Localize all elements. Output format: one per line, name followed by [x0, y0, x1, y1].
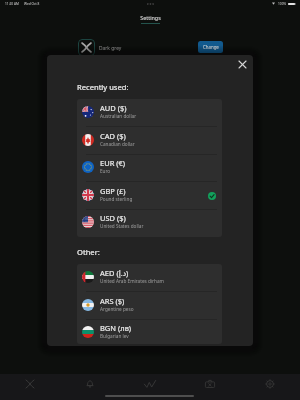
button[interactable]: CAD ($) — [77, 127, 222, 155]
button[interactable]: Alerts — [75, 374, 105, 393]
button[interactable]: EUR (€) — [77, 154, 222, 182]
button[interactable]: BGN (лв) — [77, 319, 222, 344]
staticText: GBP (£) — [100, 186, 126, 196]
staticText: Australian dollar — [100, 113, 137, 119]
staticText: 11:20 AM — [5, 2, 19, 6]
button[interactable]: AUD ($) — [77, 99, 222, 127]
staticText: United States dollar — [100, 223, 144, 229]
staticText: United Arab Emirates dirham — [100, 278, 164, 284]
button[interactable]: USD ($) — [77, 209, 222, 237]
staticText: Dark grey — [99, 45, 122, 52]
staticText: AUD ($) — [100, 103, 127, 113]
staticText: ARS ($) — [100, 296, 125, 306]
button[interactable]: Charts — [135, 374, 165, 393]
staticText: Canadian dollar — [100, 141, 135, 147]
button[interactable]: Settings — [255, 374, 285, 393]
staticText: Euro — [100, 168, 111, 174]
button[interactable]: Change — [198, 41, 223, 53]
staticText: Bulgarian lev — [100, 333, 129, 339]
button[interactable]: ARS ($) — [77, 292, 222, 320]
staticText: AED (د.إ) — [100, 268, 129, 278]
staticText: 100% — [278, 2, 287, 6]
staticText: Pound sterling — [100, 196, 133, 202]
staticText: Recently used: — [77, 82, 129, 92]
staticText: Settings — [140, 14, 161, 21]
staticText: EUR (€) — [100, 158, 126, 168]
staticText: Argentine peso — [100, 306, 134, 312]
staticText: Wed Oct 8 — [24, 2, 40, 6]
button[interactable]: Close — [235, 57, 250, 72]
button[interactable]: GBP (£) — [77, 182, 222, 210]
button[interactable]: App theme icon — [78, 39, 95, 56]
staticText: BGN (лв) — [100, 323, 132, 333]
staticText: Other: — [77, 247, 100, 257]
staticText: CAD ($) — [100, 131, 126, 141]
button[interactable]: Scan currency — [195, 374, 225, 393]
button[interactable]: Home — [15, 374, 45, 393]
button[interactable]: AED (د.إ) — [77, 264, 222, 292]
staticText: USD ($) — [100, 213, 126, 223]
staticText: Change — [203, 44, 219, 50]
